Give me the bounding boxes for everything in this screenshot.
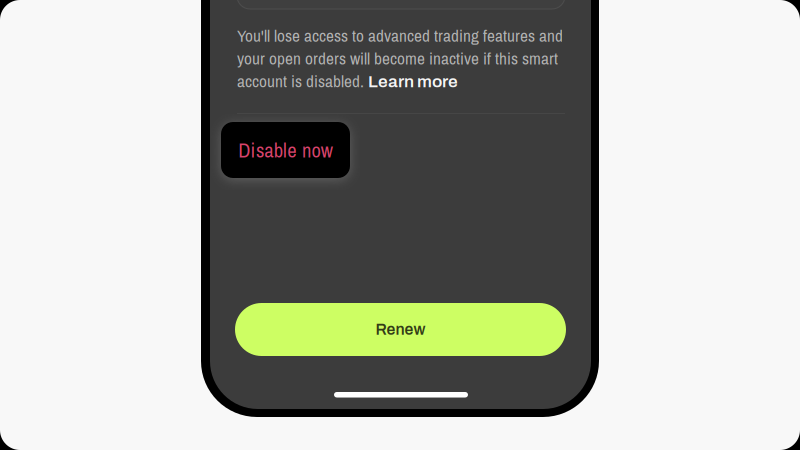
button[interactable]: You'll lose access to advanced trading f… [237, 24, 565, 92]
button[interactable]: Renew [235, 303, 566, 356]
staticText: Renew [375, 321, 425, 338]
staticText: Disable now [238, 136, 333, 164]
staticText: You'll lose access to advanced trading f… [237, 24, 563, 92]
button[interactable]: Disable now [221, 122, 350, 178]
